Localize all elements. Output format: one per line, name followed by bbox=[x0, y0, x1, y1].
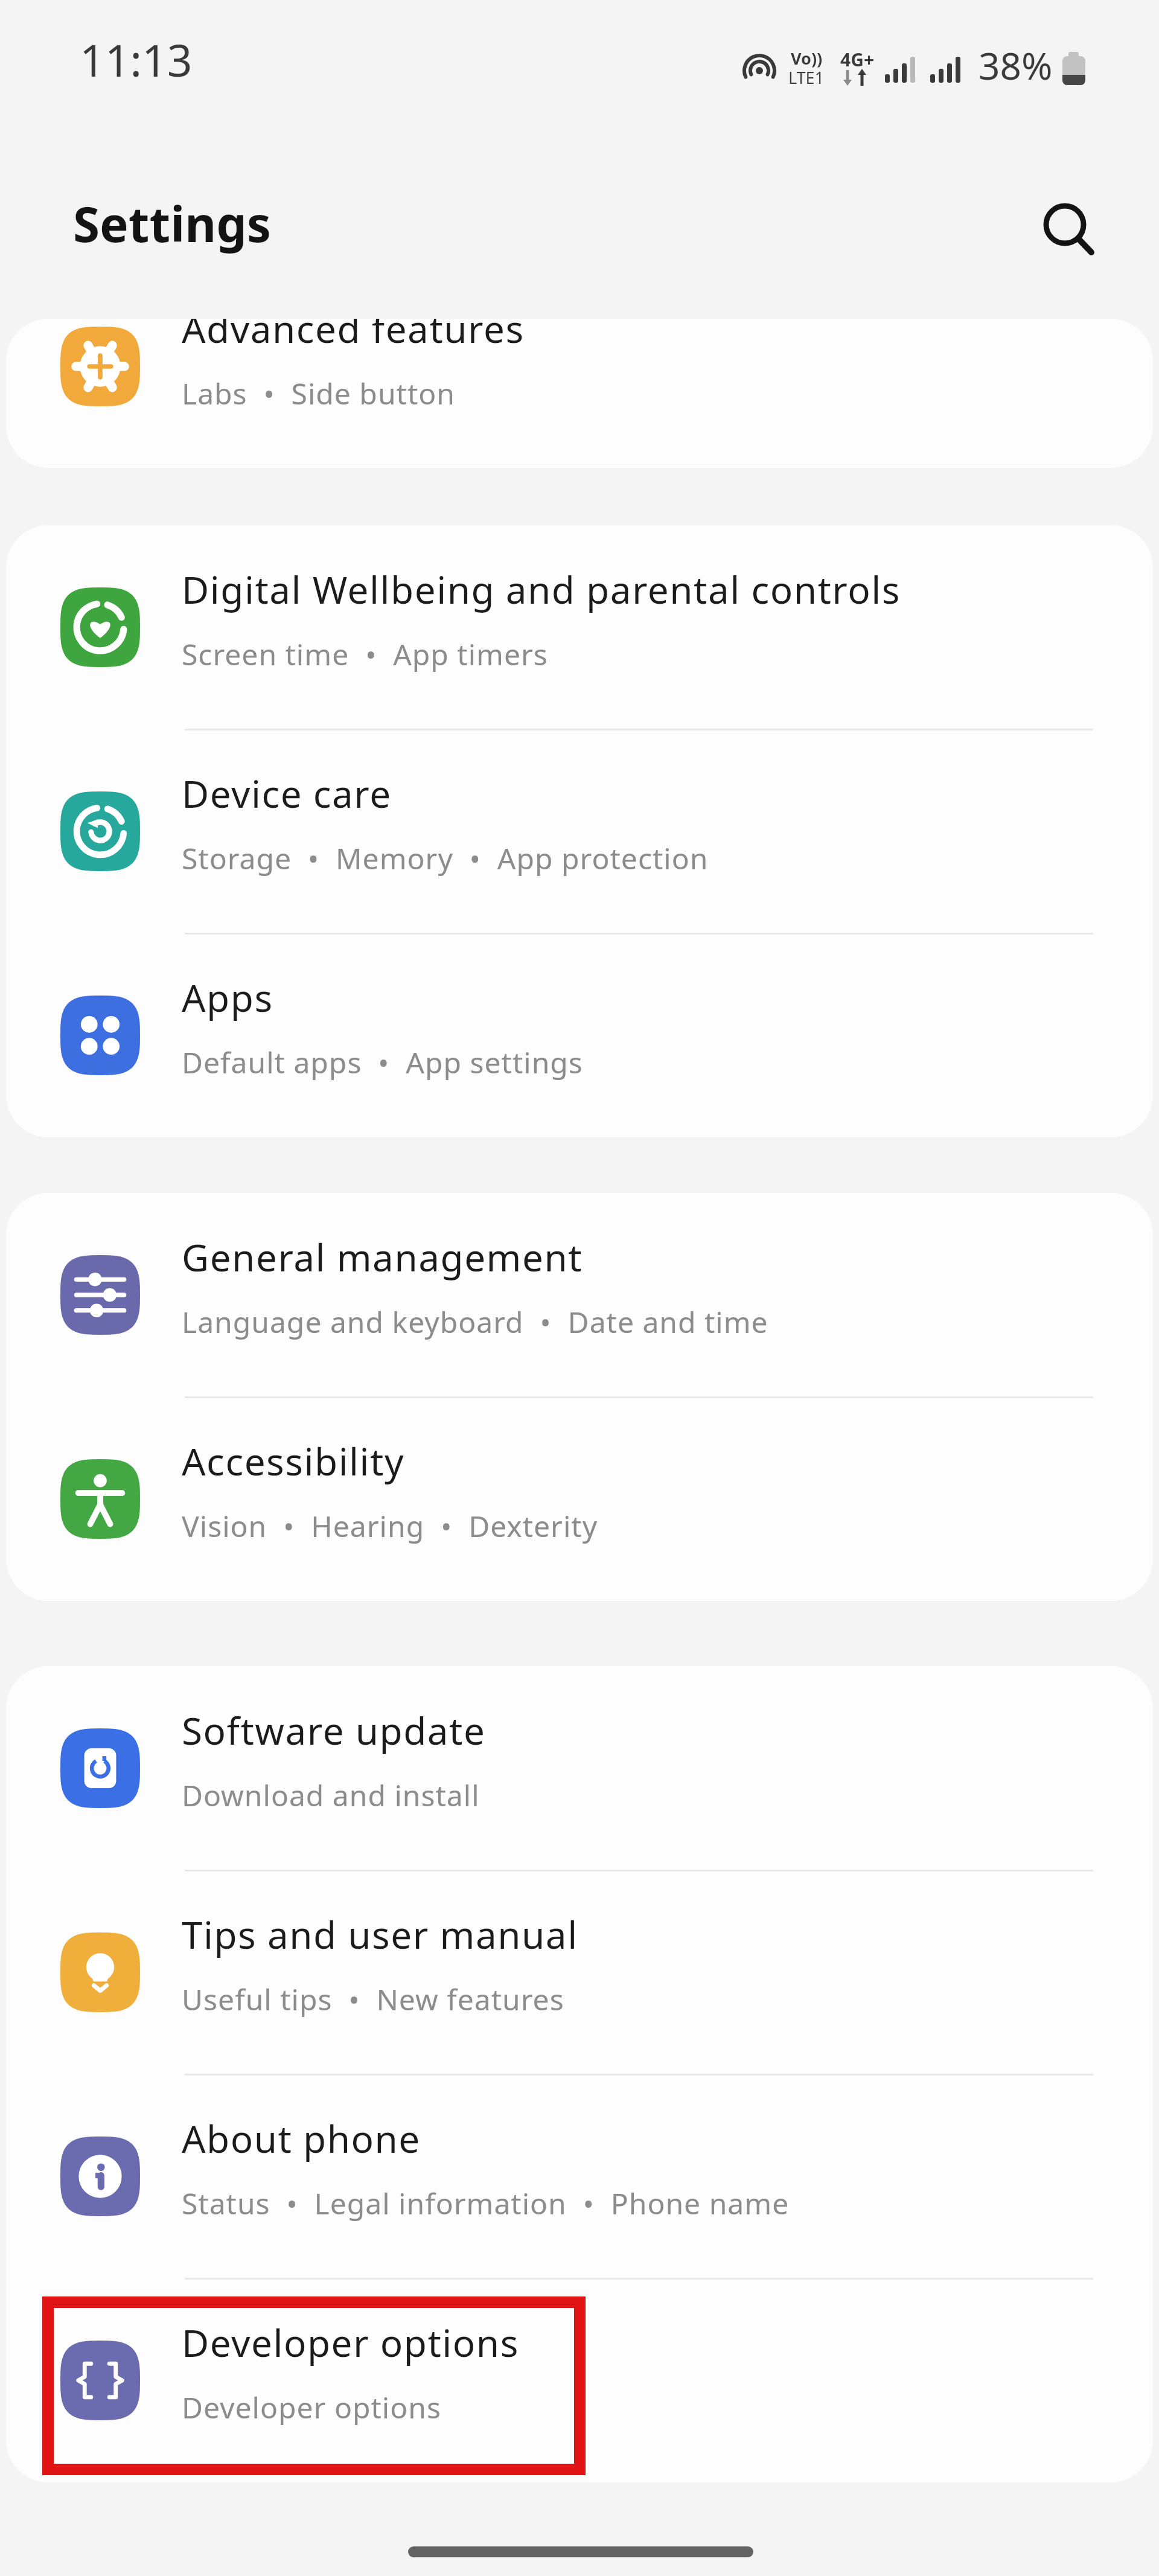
staticText: Developer options bbox=[182, 2317, 519, 2368]
staticText: About phone bbox=[182, 2113, 421, 2164]
staticText: Apps bbox=[182, 972, 273, 1023]
staticText: Developer options bbox=[182, 2388, 441, 2427]
button[interactable]: Accessibility bbox=[6, 1397, 1153, 1601]
staticText: 38% bbox=[979, 40, 1053, 91]
button[interactable]: About phone bbox=[6, 2074, 1153, 2278]
button[interactable]: Tips and user manual bbox=[6, 1870, 1153, 2074]
staticText: Status • Legal information • Phone name bbox=[182, 2184, 790, 2223]
staticText: Vo)) bbox=[791, 47, 823, 69]
staticText: Software update bbox=[182, 1705, 486, 1756]
staticText: Storage • Memory • App protection bbox=[182, 839, 709, 878]
staticText: Tips and user manual bbox=[182, 1909, 578, 1960]
staticText: LTE1 bbox=[788, 66, 825, 89]
staticText: Vision • Hearing • Dexterity bbox=[182, 1506, 598, 1545]
staticText: General management bbox=[182, 1232, 583, 1282]
button[interactable]: Device care bbox=[6, 729, 1153, 933]
button[interactable]: Software update bbox=[6, 1666, 1153, 1870]
staticText: Labs • Side button bbox=[182, 374, 455, 413]
staticText: 11:13 bbox=[80, 30, 193, 89]
staticText: Download and install bbox=[182, 1775, 480, 1815]
button[interactable]: Digital Wellbeing and parental controls bbox=[6, 525, 1153, 729]
button[interactable]: General management bbox=[6, 1193, 1153, 1397]
staticText: Device care bbox=[182, 768, 392, 819]
staticText: Screen time • App timers bbox=[182, 634, 548, 674]
staticText: 4G+ bbox=[840, 47, 875, 72]
staticText: Accessibility bbox=[182, 1436, 405, 1486]
button[interactable]: Developer options bbox=[6, 2278, 1153, 2482]
staticText: Useful tips • New features bbox=[182, 1980, 564, 2019]
staticText: Language and keyboard • Date and time bbox=[182, 1302, 768, 1341]
staticText: Digital Wellbeing and parental controls bbox=[182, 564, 901, 615]
button[interactable]: Apps bbox=[6, 933, 1153, 1137]
button[interactable]: Advanced features bbox=[6, 319, 1153, 468]
button[interactable] bbox=[1043, 203, 1099, 258]
staticText: Advanced features bbox=[182, 319, 525, 354]
staticText: Default apps • App settings bbox=[182, 1043, 583, 1082]
staticText: Settings bbox=[73, 190, 271, 256]
